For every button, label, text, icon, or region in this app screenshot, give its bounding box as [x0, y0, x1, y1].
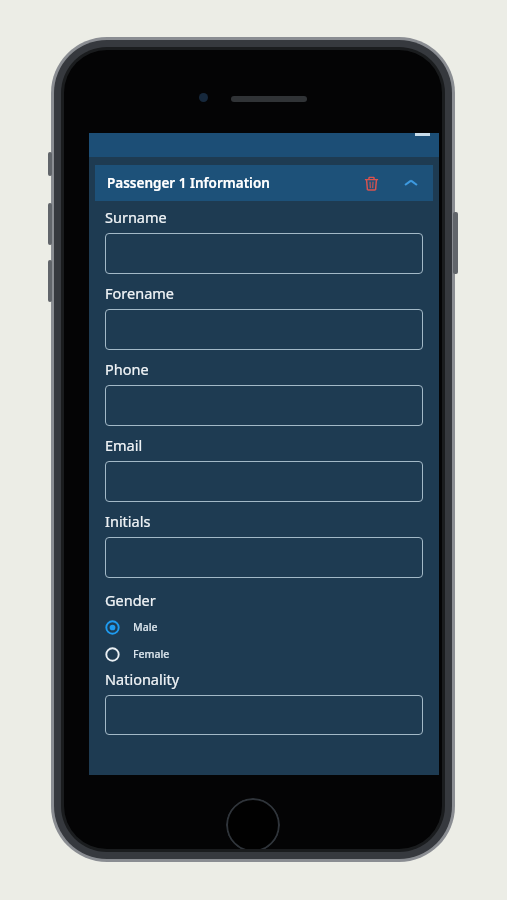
button[interactable]: Delete passenger [358, 170, 384, 196]
button[interactable] [105, 385, 423, 426]
staticText: Surname [105, 207, 167, 227]
button[interactable]: Female [105, 643, 423, 665]
button[interactable]: Male [105, 616, 423, 638]
staticText: Forename [105, 283, 175, 303]
button[interactable] [105, 461, 423, 502]
button[interactable] [105, 695, 423, 735]
staticText: Phone [105, 359, 149, 379]
staticText: Passenger 1 Information [107, 174, 270, 192]
staticText: Female [133, 647, 170, 661]
button[interactable]: Passenger 1 Information [95, 165, 433, 201]
staticText: Male [133, 620, 158, 634]
button[interactable] [89, 133, 439, 157]
button[interactable]: Collapse section [398, 170, 424, 196]
staticText: Email [105, 435, 143, 455]
button[interactable] [105, 537, 423, 578]
staticText: Nationality [105, 669, 180, 689]
staticText: Gender [105, 590, 156, 610]
button[interactable] [105, 309, 423, 350]
button[interactable] [105, 233, 423, 274]
staticText: Initials [105, 511, 151, 531]
